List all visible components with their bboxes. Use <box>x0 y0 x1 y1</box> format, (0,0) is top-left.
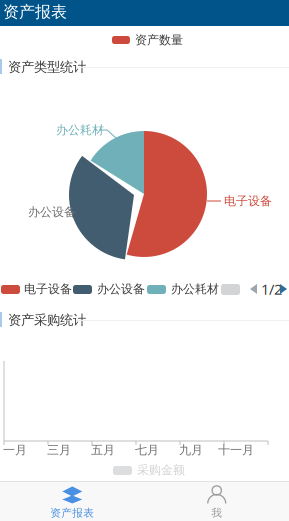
staticText: 办公耗材 <box>56 123 104 137</box>
staticText: 资产报表 <box>50 506 94 519</box>
button[interactable]: Previous page <box>247 282 261 296</box>
staticText: 资产报表 <box>3 2 67 22</box>
staticText: 采购金额 <box>137 463 185 477</box>
staticText: 1/2 <box>261 279 282 299</box>
staticText: 办公耗材 <box>171 282 219 296</box>
staticText: 九月 <box>179 443 203 457</box>
staticText: 办公设备 <box>28 205 76 219</box>
staticText: 三月 <box>47 443 71 457</box>
staticText: 电子设备 <box>24 282 72 296</box>
staticText: 资产采购统计 <box>8 312 86 328</box>
staticText: 资产数量 <box>135 33 183 47</box>
button[interactable]: 资产报表 <box>0 482 144 521</box>
staticText: 七月 <box>135 443 159 457</box>
staticText: 办公设备 <box>97 282 145 296</box>
button[interactable]: 我 <box>144 482 289 521</box>
staticText: 一月 <box>3 443 27 457</box>
staticText: 十一月 <box>218 443 254 457</box>
staticText: 五月 <box>91 443 115 457</box>
staticText: 我 <box>211 506 222 519</box>
button[interactable]: Next page <box>276 282 289 296</box>
button[interactable]: 资产报表 <box>0 0 289 521</box>
staticText: 资产类型统计 <box>8 59 86 75</box>
staticText: 电子设备 <box>224 194 272 208</box>
